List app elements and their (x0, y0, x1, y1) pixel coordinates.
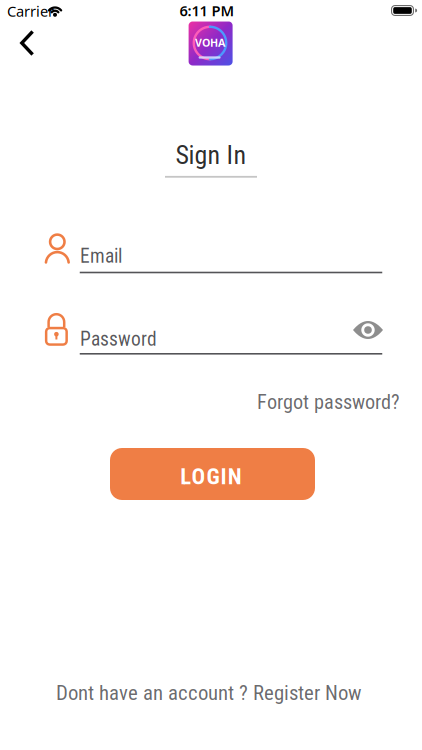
staticText: Dont have an account ? Register Now (56, 681, 362, 705)
staticText: VOHA (195, 36, 225, 50)
staticText: LOGIN (180, 463, 242, 490)
staticText: Forgot password? (257, 390, 400, 414)
staticText: Password (80, 328, 157, 350)
staticText: 6:11 PM (179, 1, 234, 20)
staticText: Email (80, 245, 122, 267)
staticText: Carrier (7, 1, 54, 21)
staticText: Sign In (175, 140, 246, 170)
